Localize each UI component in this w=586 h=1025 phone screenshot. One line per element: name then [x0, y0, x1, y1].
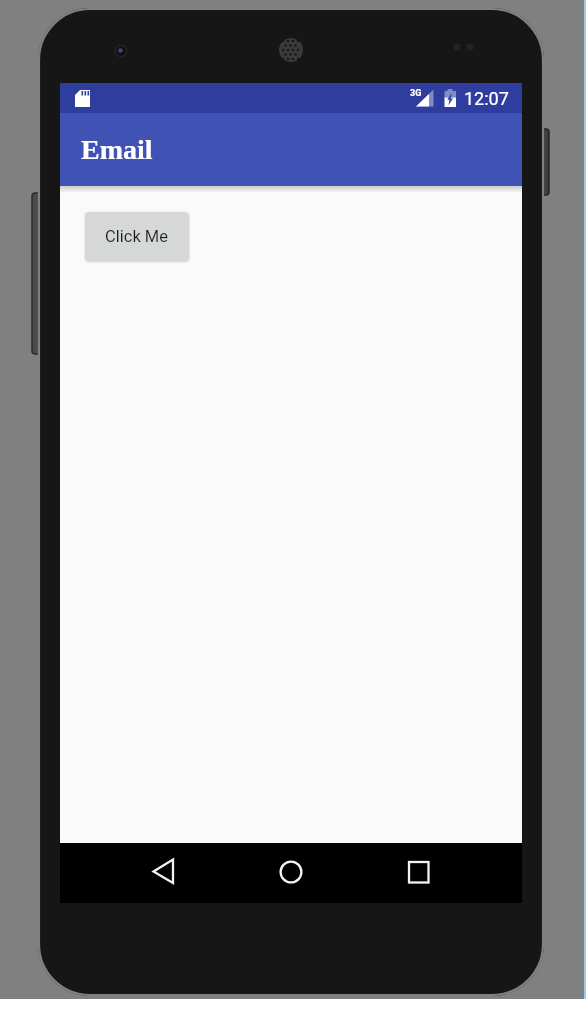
staticText: 12:07: [464, 88, 509, 109]
button[interactable]: Click Me: [85, 212, 189, 261]
button[interactable]: [139, 848, 187, 896]
staticText: 3G: [410, 88, 422, 99]
button[interactable]: [395, 848, 443, 896]
staticText: Click Me: [105, 227, 169, 246]
staticText: Email: [81, 134, 153, 165]
button[interactable]: [267, 848, 315, 896]
